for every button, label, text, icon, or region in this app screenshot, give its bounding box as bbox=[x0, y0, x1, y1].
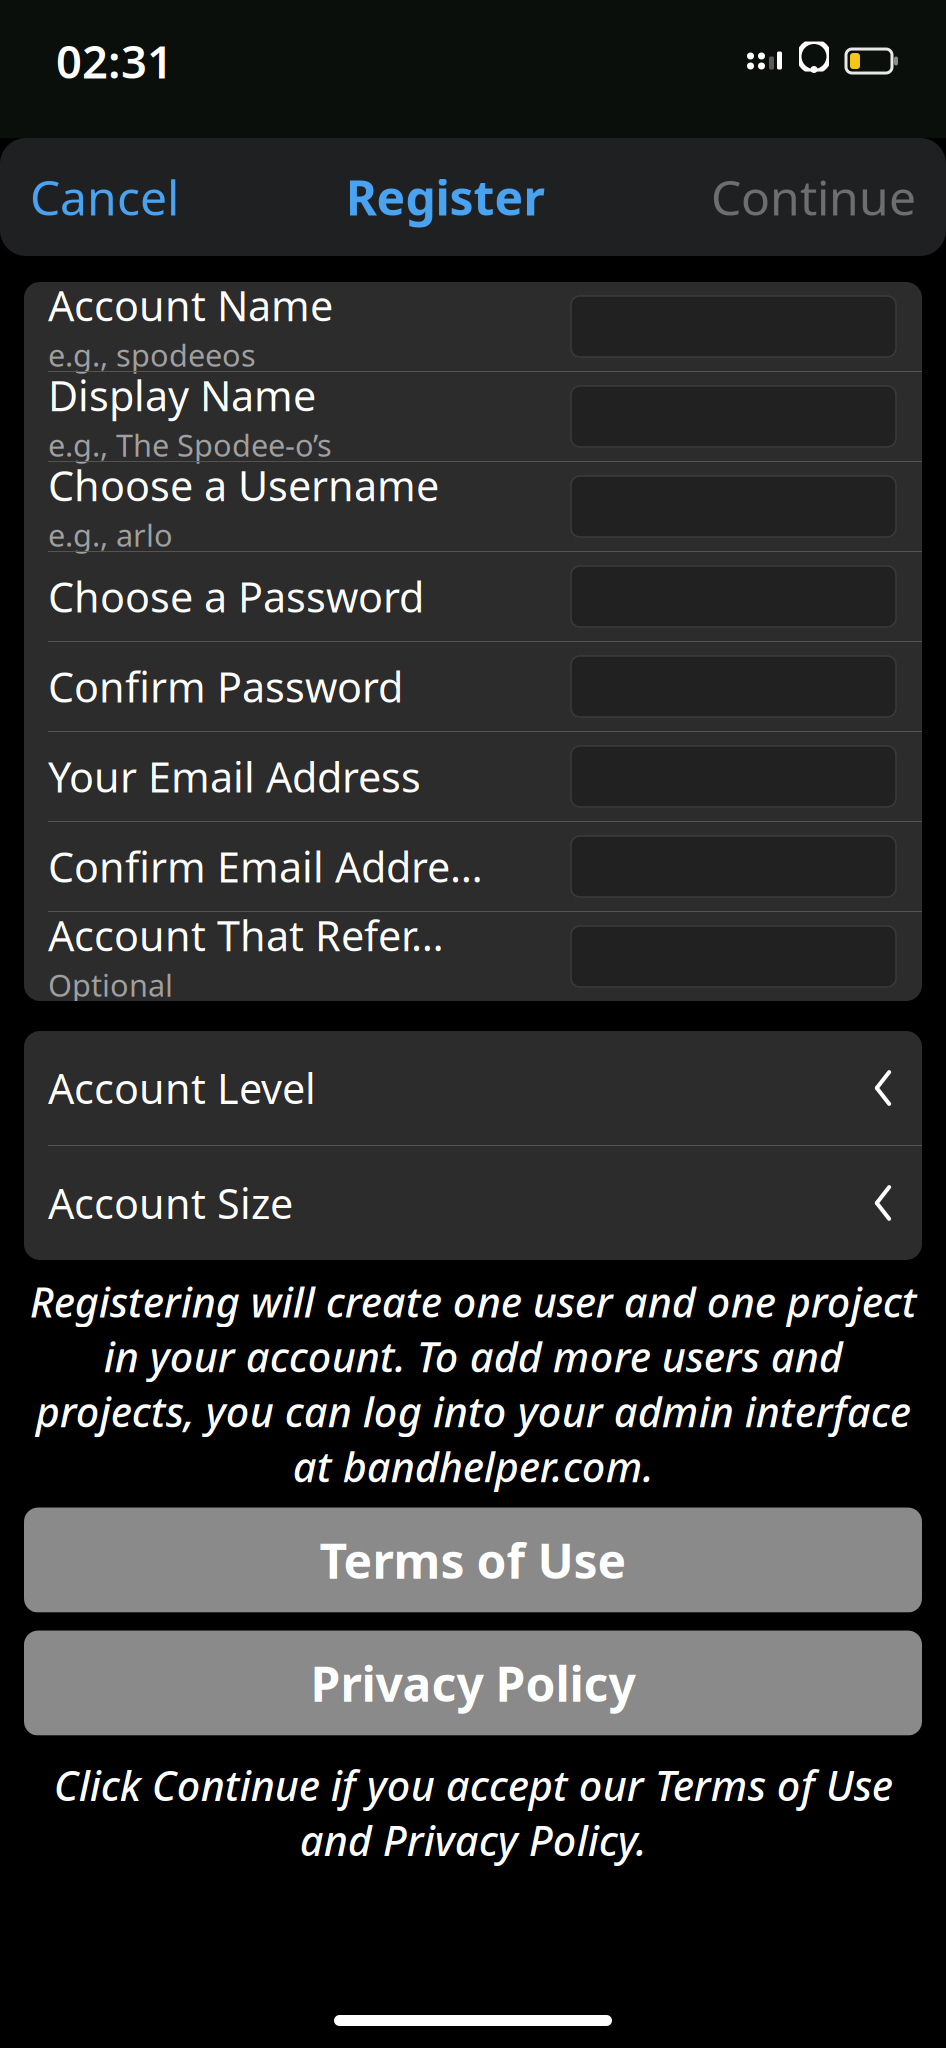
staticText: Register bbox=[345, 165, 544, 229]
staticText: Choose a Password bbox=[48, 569, 424, 624]
button[interactable]: Account That Refer… bbox=[24, 912, 922, 1001]
staticText: Optional bbox=[48, 965, 173, 1005]
staticText: Confirm Password bbox=[48, 659, 403, 714]
button[interactable]: Continue bbox=[701, 151, 926, 243]
staticText: e.g., The Spodee-o’s bbox=[48, 425, 332, 465]
staticText: Confirm Email Addre… bbox=[48, 839, 483, 894]
button[interactable]: Account Size bbox=[24, 1146, 922, 1260]
staticText: 02:31 bbox=[56, 31, 173, 91]
staticText: Account Name bbox=[48, 278, 333, 333]
button[interactable]: Confirm Email Addre… bbox=[24, 822, 922, 911]
staticText: Click Continue if you accept our Terms o… bbox=[53, 1758, 892, 1867]
staticText: Privacy Policy bbox=[310, 1651, 635, 1715]
staticText: Continue bbox=[711, 165, 916, 229]
button[interactable]: Your Email Address bbox=[24, 732, 922, 821]
button[interactable]: Privacy Policy bbox=[24, 1631, 922, 1736]
button[interactable]: Confirm Password bbox=[24, 642, 922, 731]
button[interactable]: Account Level bbox=[24, 1031, 922, 1145]
staticText: Account Size bbox=[48, 1176, 293, 1230]
staticText: Account That Refer… bbox=[48, 908, 444, 963]
staticText: Registering will create one user and one… bbox=[29, 1274, 916, 1494]
button[interactable]: Display Name bbox=[24, 372, 922, 461]
staticText: Account Level bbox=[48, 1061, 316, 1115]
staticText: Choose a Username bbox=[48, 458, 439, 513]
staticText: Terms of Use bbox=[319, 1528, 626, 1592]
staticText: e.g., arlo bbox=[48, 515, 173, 555]
staticText: Your Email Address bbox=[48, 749, 421, 804]
button[interactable]: Cancel bbox=[20, 151, 189, 243]
button[interactable]: Terms of Use bbox=[24, 1508, 922, 1613]
staticText: e.g., spodeeos bbox=[48, 335, 256, 375]
button[interactable]: Account Name bbox=[24, 282, 922, 371]
staticText: Cancel bbox=[30, 165, 179, 229]
staticText: Display Name bbox=[48, 368, 316, 423]
button[interactable]: Choose a Password bbox=[24, 552, 922, 641]
button[interactable]: Choose a Username bbox=[24, 462, 922, 551]
